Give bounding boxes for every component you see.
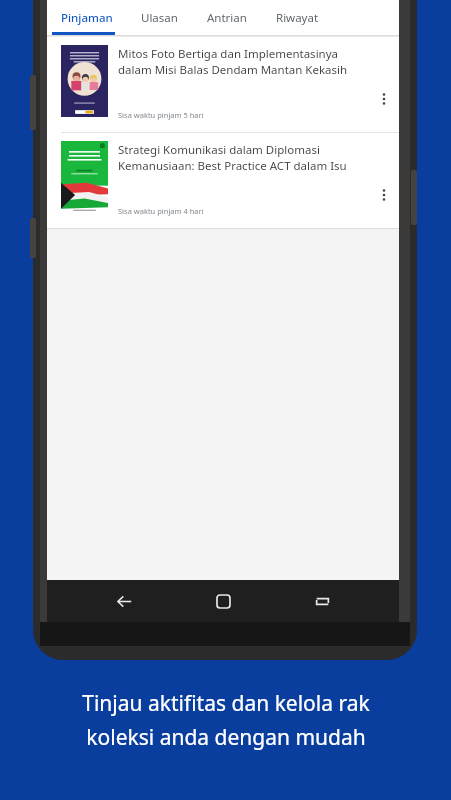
staticText: Mitos Foto Bertiga dan Implementasinya d…	[118, 46, 369, 77]
staticText: Tinjau aktifitas dan kelola rak	[82, 689, 370, 718]
button[interactable]: More options	[369, 180, 399, 210]
button[interactable]: Recent apps	[300, 580, 344, 622]
staticText: Strategi Komunikasi dalam Diplomasi Kema…	[118, 142, 369, 173]
staticText: Sisa waktu pinjam 4 hari	[118, 206, 204, 216]
button[interactable]: Pinjaman	[47, 0, 126, 35]
staticText: Riwayat	[276, 10, 319, 26]
button[interactable]: Back	[102, 580, 146, 622]
staticText: Pinjaman	[61, 10, 113, 26]
staticText: Antrian	[207, 10, 247, 26]
button[interactable]: Antrian	[192, 0, 262, 35]
staticText: Sisa waktu pinjam 5 hari	[118, 110, 204, 120]
button[interactable]: Strategi Komunikasi dalam Diplomasi Kema…	[47, 133, 399, 228]
button[interactable]: More options	[369, 84, 399, 114]
button[interactable]: Ulasan	[126, 0, 192, 35]
staticText: koleksi anda dengan mudah	[86, 723, 366, 752]
button[interactable]: Home	[201, 580, 245, 622]
staticText: Ulasan	[141, 10, 178, 26]
button[interactable]: Mitos Foto Bertiga dan Implementasinya d…	[47, 37, 399, 132]
button[interactable]: Riwayat	[262, 0, 332, 35]
